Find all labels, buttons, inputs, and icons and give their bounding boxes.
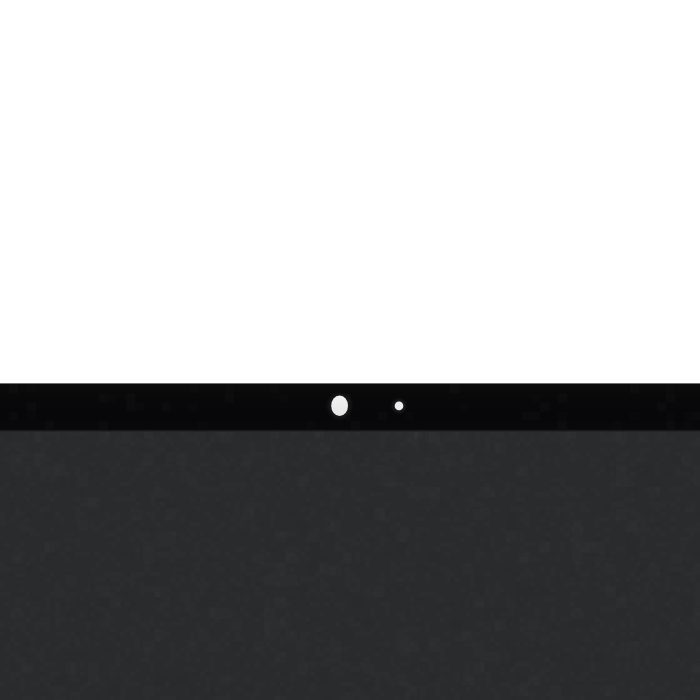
button[interactable]: Front camera and proximity sensor on the…: [0, 0, 700, 700]
